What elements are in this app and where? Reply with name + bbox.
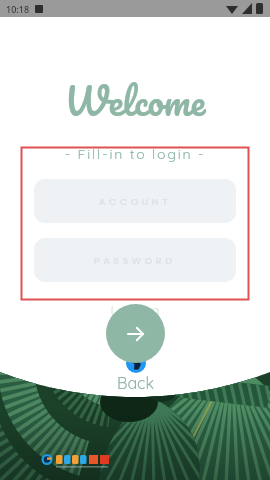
staticText: Back: [117, 373, 154, 393]
staticText: PASSWORD: [94, 254, 176, 267]
button[interactable]: Back: [117, 353, 154, 393]
staticText: 10:18: [6, 3, 30, 15]
staticText: Loading: [0, 302, 270, 318]
staticText: - Fill-in to login -: [0, 145, 270, 163]
staticText: Welcome: [0, 69, 270, 132]
button[interactable]: Continue: [106, 304, 165, 363]
staticText: ACCOUNT: [99, 195, 172, 208]
